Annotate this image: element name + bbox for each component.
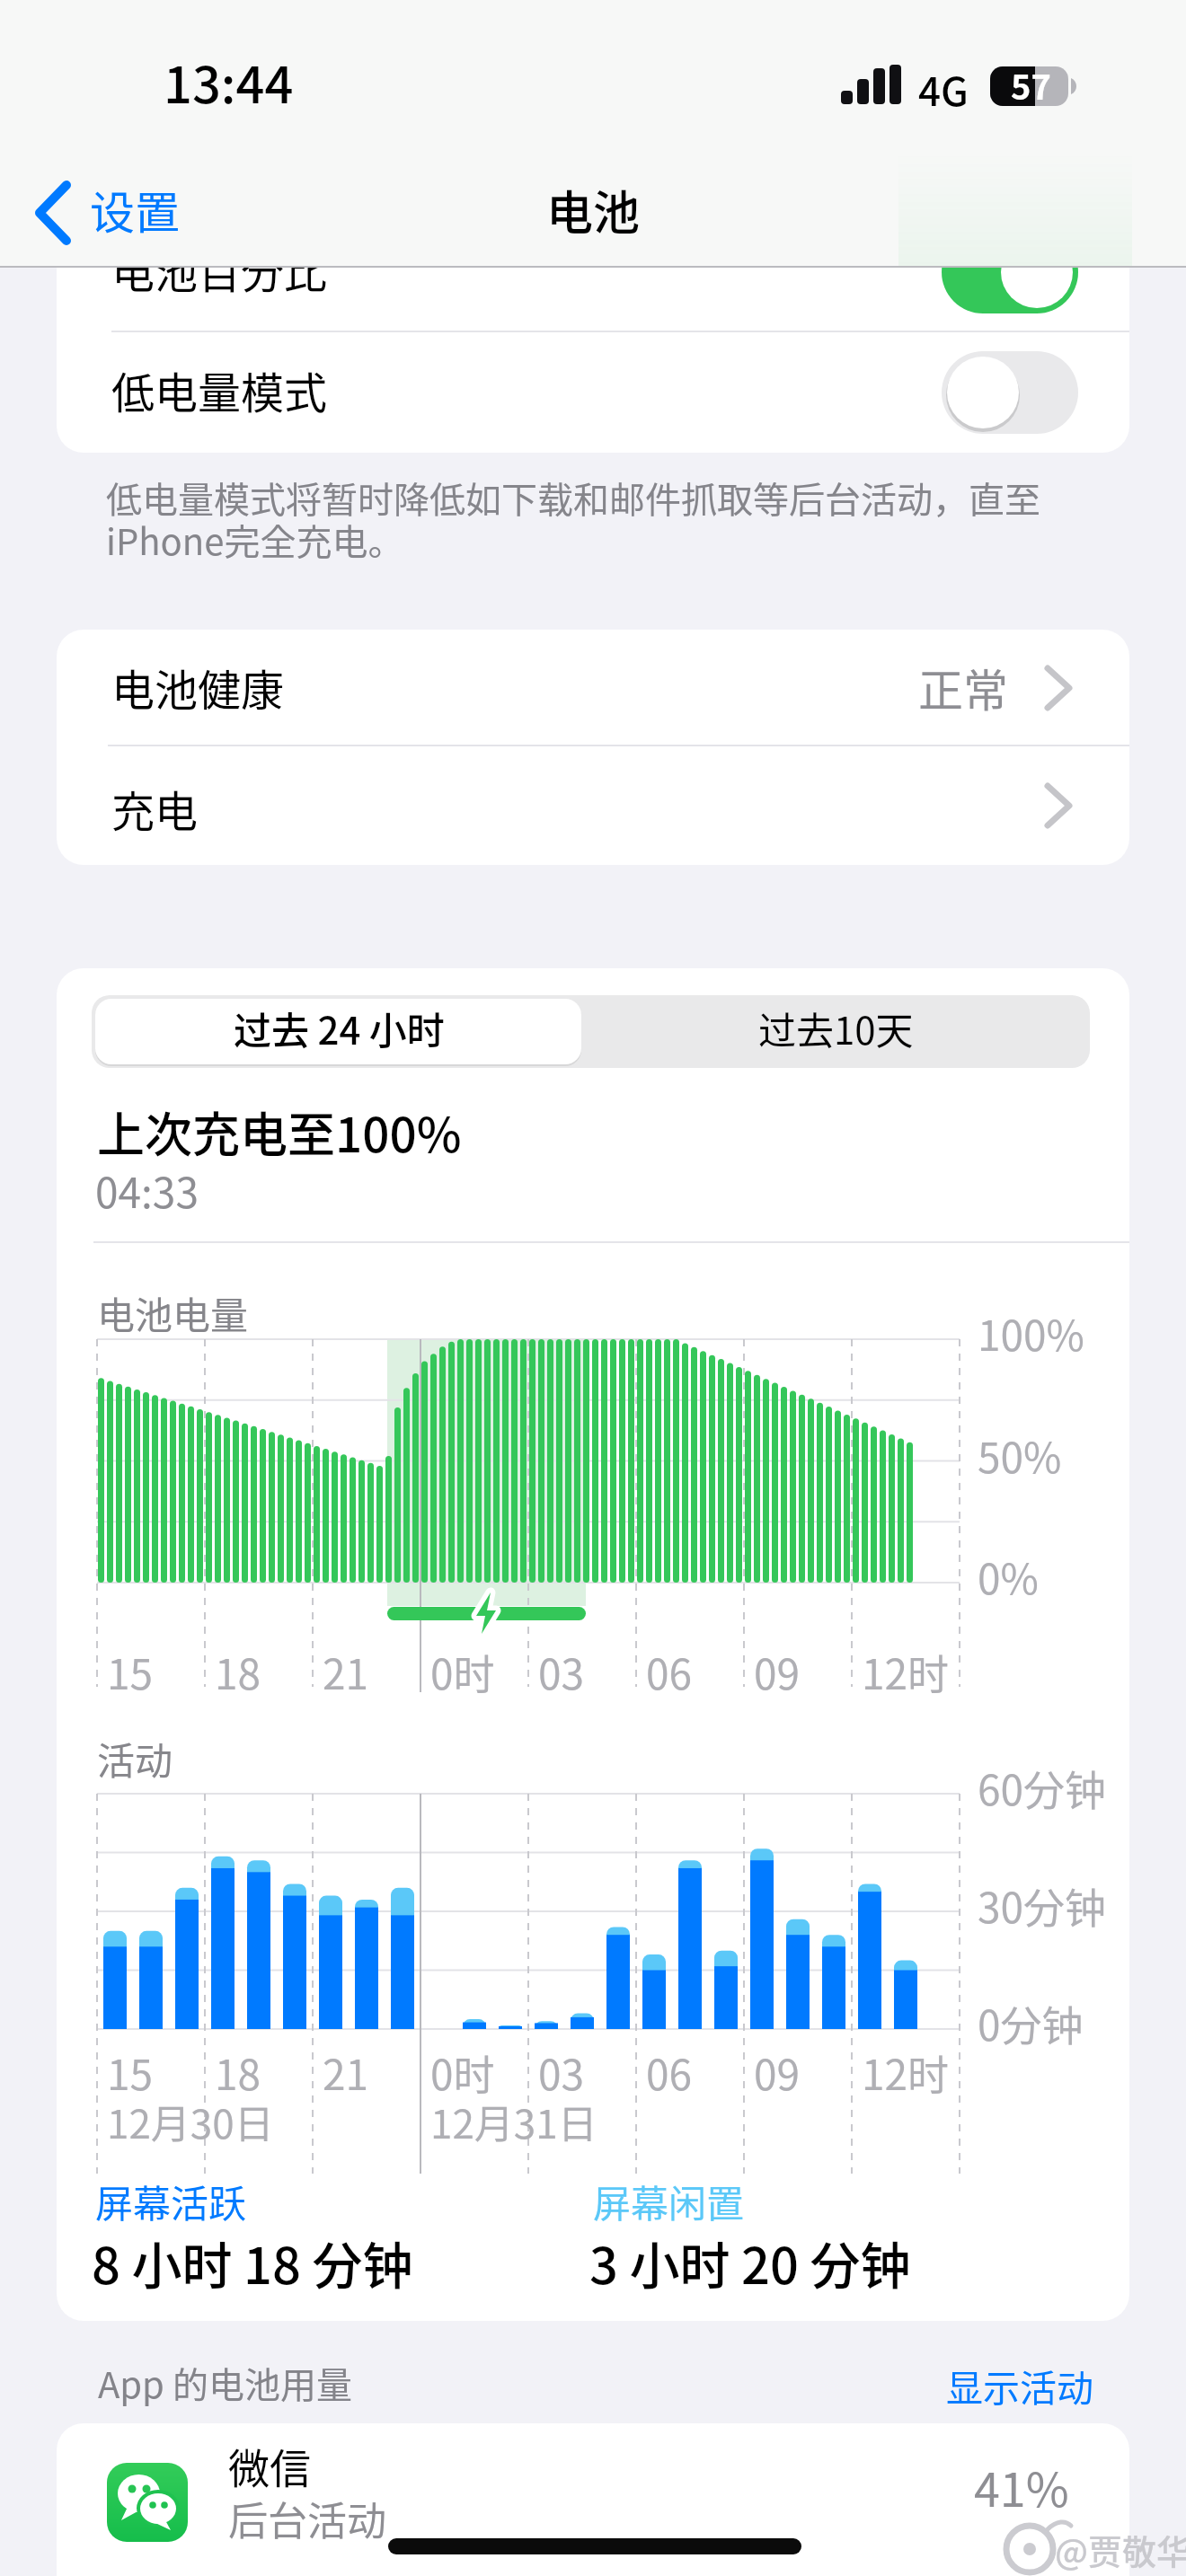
button[interactable] [934,2350,1096,2404]
staticText: 设置 [90,177,180,242]
staticText: 12月31日 [430,2093,597,2150]
staticText: 低电量模式将暂时降低如下载和邮件抓取等后台活动，直至 [106,472,1040,524]
staticText: 正常 [918,655,1008,719]
staticText: 0分钟 [978,1993,1084,2053]
button[interactable] [27,171,207,256]
staticText: 18 [215,2042,261,2103]
staticText: iPhone完全充电。 [106,514,404,566]
staticText: 30分钟 [978,1875,1107,1936]
staticText: 充电 [111,777,199,840]
staticText: 04:33 [95,1160,199,1221]
staticText: 57 [1011,60,1051,110]
staticText: 21 [323,1642,369,1702]
staticText: 18 [215,1642,261,1702]
staticText: App 的电池用量 [98,2357,352,2409]
staticText: 12时 [862,1642,950,1702]
staticText: 0% [978,1547,1039,1607]
staticText: 微信 [228,2436,311,2496]
staticText: 电池 [546,176,641,243]
staticText: 03 [538,1642,585,1702]
staticText: @贾敬华 [1055,2525,1186,2574]
staticText: 03 [538,2042,585,2103]
staticText: 100% [978,1303,1084,1363]
staticText: 3 小时 20 分钟 [589,2226,911,2298]
staticText: 4G [918,60,969,118]
staticText: 50% [978,1425,1062,1486]
staticText: 06 [646,1642,693,1702]
staticText: 后台活动 [228,2490,386,2547]
staticText: 09 [754,1642,801,1702]
staticText: 21 [323,2042,369,2103]
staticText: 15 [107,1642,154,1702]
button[interactable] [57,630,1129,745]
staticText: 8 小时 18 分钟 [92,2226,413,2298]
button[interactable] [95,999,581,1064]
staticText: 0时 [430,1642,495,1702]
staticText: 电池百分比 [111,238,328,301]
staticText: 13:44 [164,45,294,118]
staticText: 0时 [430,2042,495,2103]
staticText: 06 [646,2042,693,2103]
staticText: 电池电量 [97,1285,249,1340]
staticText: 屏幕闲置 [593,2174,745,2228]
staticText: 过去10天 [758,1001,914,1055]
staticText: 过去 24 小时 [234,1001,445,1055]
staticText: 电池健康 [111,656,285,719]
staticText: 上次充电至100% [97,1098,462,1167]
staticText: 41% [974,2453,1069,2520]
button[interactable] [57,2423,1129,2576]
staticText: 12时 [862,2042,950,2103]
staticText: 活动 [97,1731,173,1786]
button[interactable] [581,999,1090,1064]
button[interactable] [57,745,1129,865]
staticText: 12月30日 [107,2093,274,2150]
staticText: 低电量模式 [111,358,328,421]
staticText: 60分钟 [978,1758,1107,1818]
staticText: 09 [754,2042,801,2103]
button[interactable] [57,269,1129,331]
staticText: 显示活动 [946,2359,1093,2412]
staticText: 15 [107,2042,154,2103]
staticText: 屏幕活跃 [95,2174,247,2228]
button[interactable] [57,331,1129,453]
